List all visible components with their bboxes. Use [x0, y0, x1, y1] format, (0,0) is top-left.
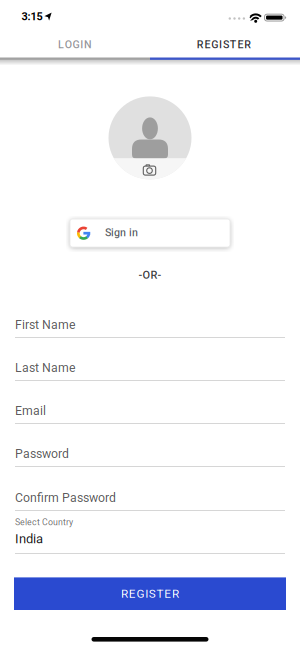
staticText: 3:15 — [21, 10, 42, 23]
staticText: N — [84, 38, 92, 51]
staticText: I — [145, 587, 148, 601]
staticText: I — [80, 38, 83, 51]
staticText: G — [72, 38, 79, 51]
staticText: O — [65, 38, 72, 51]
staticText: -OR- — [138, 269, 161, 281]
button[interactable]: Add profile photo — [108, 96, 191, 179]
staticText: R — [244, 38, 251, 51]
staticText: E — [237, 38, 243, 51]
staticText: E — [204, 38, 210, 51]
staticText: R — [197, 38, 204, 51]
staticText: T — [230, 38, 237, 51]
staticText: G — [211, 38, 218, 51]
button[interactable]: Select Country — [0, 514, 300, 558]
staticText: L — [58, 38, 64, 51]
staticText: R — [121, 587, 128, 601]
staticText: T — [157, 587, 164, 601]
staticText: Confirm Password — [15, 490, 116, 505]
staticText: G — [136, 587, 144, 601]
staticText: Password — [15, 446, 69, 461]
button[interactable]: Sign in — [70, 219, 230, 247]
staticText: E — [164, 587, 171, 601]
staticText: Last Name — [15, 360, 76, 375]
button[interactable]: Email — [15, 404, 285, 424]
staticText: I — [219, 38, 222, 51]
staticText: R — [172, 587, 179, 601]
staticText: Sign in — [105, 226, 138, 239]
staticText: E — [129, 587, 136, 601]
button[interactable]: R — [14, 577, 286, 610]
staticText: S — [149, 587, 156, 601]
button[interactable]: R — [149, 31, 299, 57]
button[interactable]: L — [0, 31, 150, 57]
staticText: S — [223, 38, 229, 51]
button[interactable]: Password — [15, 447, 285, 467]
button[interactable]: First Name — [15, 318, 285, 338]
staticText: Select Country — [15, 517, 73, 527]
staticText: Email — [15, 403, 46, 418]
staticText: First Name — [15, 317, 76, 332]
button[interactable]: Last Name — [15, 361, 285, 381]
button[interactable]: Confirm Password — [15, 491, 285, 511]
staticText: India — [15, 531, 43, 546]
